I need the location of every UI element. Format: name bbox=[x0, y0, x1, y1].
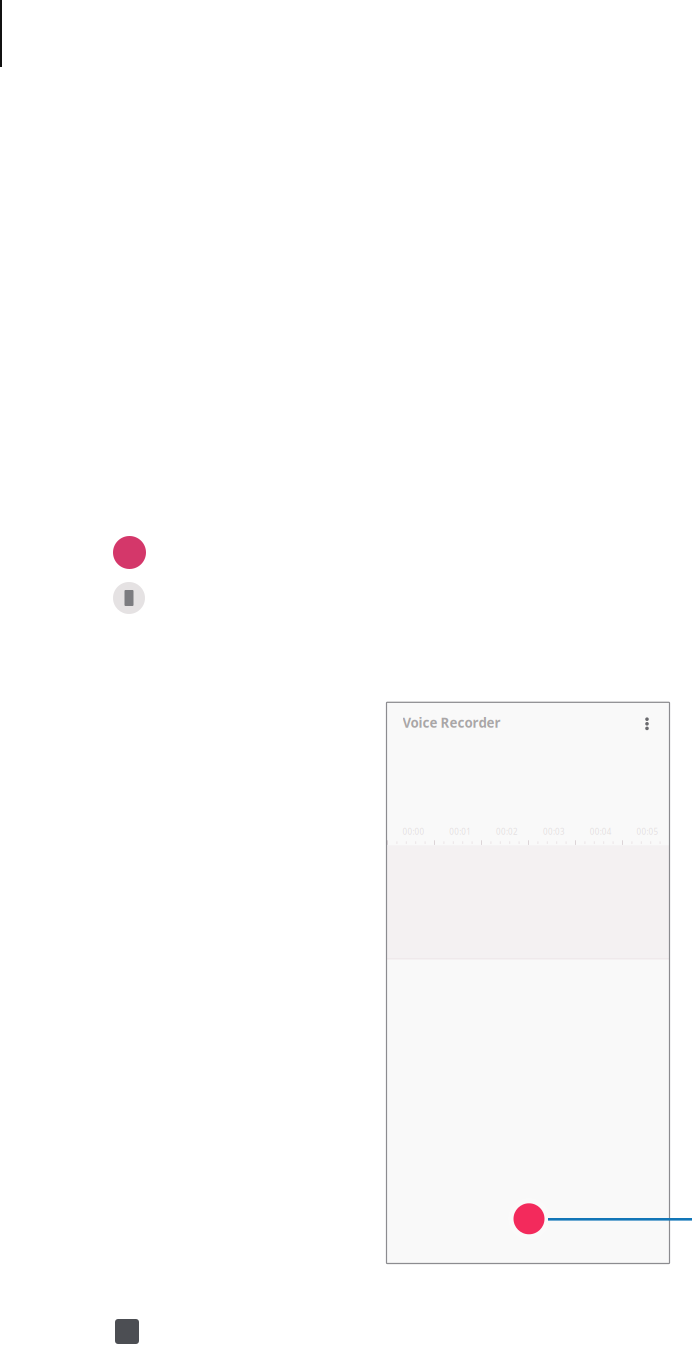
button[interactable]: Record bbox=[503, 1193, 555, 1245]
staticText: 00:04 bbox=[590, 826, 612, 837]
staticText: 00:03 bbox=[543, 826, 565, 837]
button[interactable]: More options bbox=[634, 709, 660, 739]
staticText: 00:00 bbox=[402, 826, 424, 837]
staticText: 00:05 bbox=[636, 826, 658, 837]
staticText: 00:02 bbox=[496, 826, 518, 837]
staticText: 00:01 bbox=[449, 826, 471, 837]
staticText: Voice Recorder bbox=[402, 714, 500, 731]
